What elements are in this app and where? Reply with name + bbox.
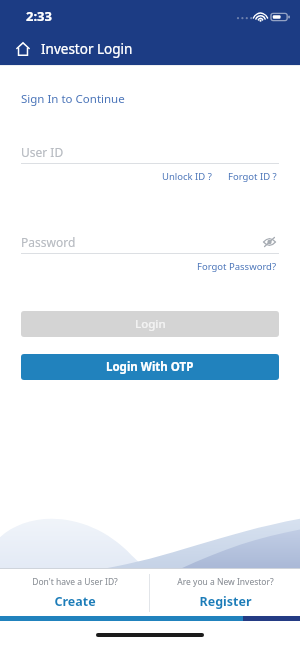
button[interactable]: Show password — [259, 232, 279, 252]
button[interactable]: Home — [8, 34, 38, 64]
button[interactable]: Unlock ID ? — [160, 170, 214, 183]
staticText: Password — [21, 234, 76, 250]
button[interactable]: Login — [21, 311, 279, 337]
button[interactable]: Don't have a User ID? — [0, 569, 149, 616]
button[interactable]: Are you a New Investor? — [150, 569, 300, 616]
button[interactable]: Forgot Password? — [195, 260, 279, 273]
staticText: Investor Login — [41, 40, 133, 58]
staticText: Unlock ID ? — [162, 170, 212, 183]
button[interactable]: Login With OTP — [21, 354, 279, 380]
staticText: Forgot Password? — [197, 260, 277, 273]
button[interactable]: Forgot ID ? — [226, 170, 279, 183]
staticText: Don't have a User ID? — [32, 576, 118, 588]
staticText: Are you a New Investor? — [177, 576, 274, 588]
staticText: Sign In to Continue — [21, 91, 125, 107]
button[interactable]: Password — [21, 231, 279, 253]
staticText: 2:33 — [26, 7, 52, 25]
staticText: User ID — [21, 144, 64, 160]
staticText: Register — [199, 593, 252, 610]
staticText: Forgot ID ? — [228, 170, 277, 183]
staticText: Login With OTP — [106, 359, 194, 375]
staticText: Login — [135, 316, 166, 332]
button[interactable]: User ID — [21, 141, 279, 163]
staticText: Create — [54, 593, 96, 610]
